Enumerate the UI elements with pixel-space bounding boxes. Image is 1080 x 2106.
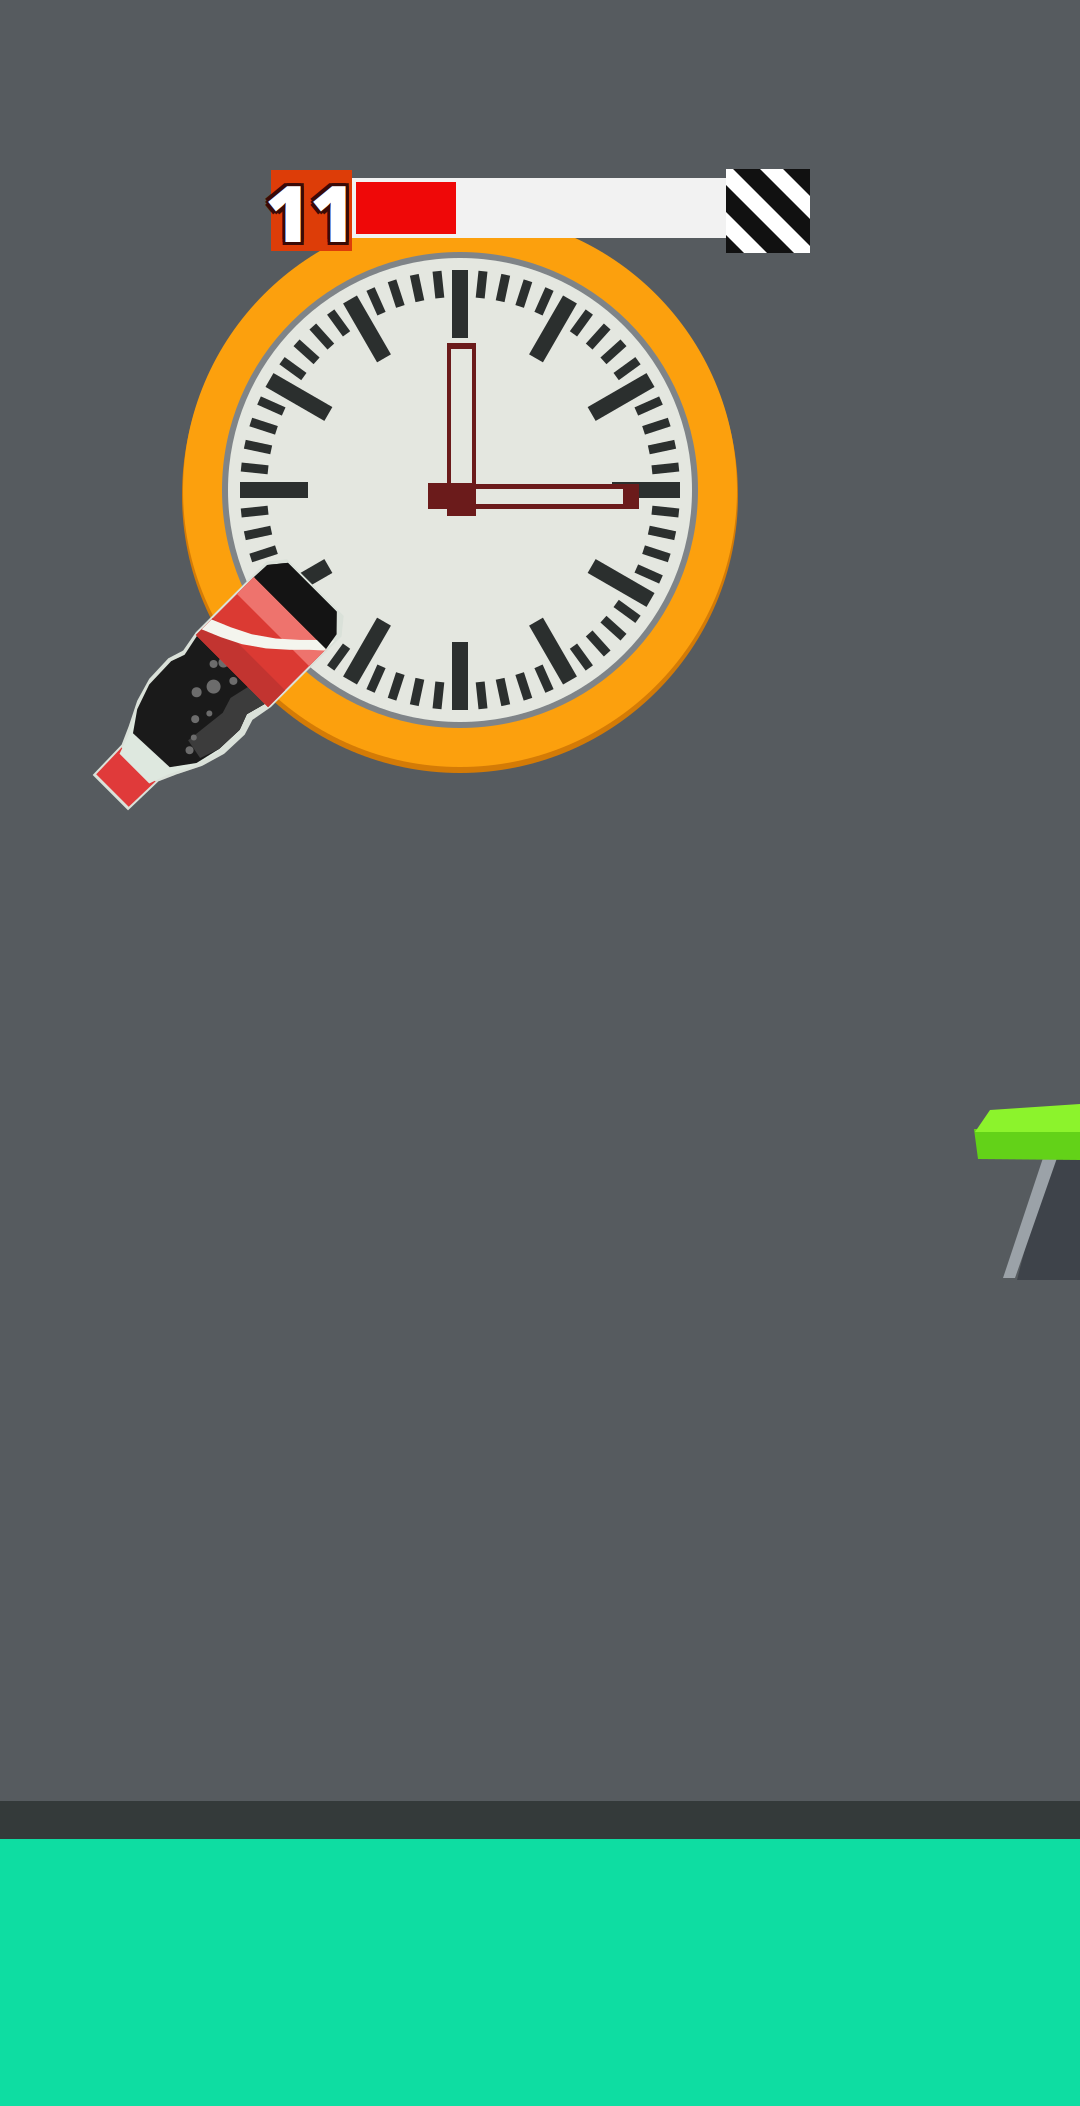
staticText: 11	[268, 164, 358, 266]
staticText: 11	[265, 158, 355, 260]
staticText: 11	[265, 161, 355, 263]
staticText: 11	[262, 164, 352, 266]
staticText: 11	[268, 161, 358, 263]
staticText: 11	[268, 158, 358, 260]
staticText: 11	[265, 164, 355, 266]
staticText: 11	[262, 161, 352, 263]
button[interactable]: Level 11	[0, 0, 1080, 2106]
staticText: 11	[262, 158, 352, 260]
